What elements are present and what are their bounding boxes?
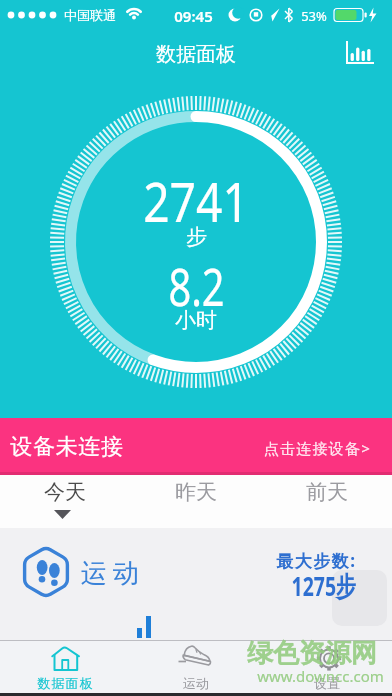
button[interactable]: 设备未连接 [0,418,392,475]
button[interactable]: 前天 [261,475,392,528]
staticText: 运动 [183,675,209,691]
staticText: 数据面板 [37,675,93,691]
staticText: 点击连接设备> [264,438,371,458]
staticText: 设备未连接 [10,433,124,461]
staticText: 09:45 [174,6,213,26]
button[interactable]: 数据面板 [0,640,130,696]
staticText: 中国联通 [64,7,116,23]
staticText: 运动 [78,557,142,590]
staticText: 绿色资源网 [247,637,377,670]
button[interactable] [340,36,380,70]
staticText: 1275步 [291,567,356,604]
staticText: 最大步数: [276,549,357,572]
staticText: 昨天 [175,479,217,505]
staticText: 数据面板 [156,42,236,67]
staticText: 前天 [306,479,348,505]
staticText: 设置 [314,675,340,691]
staticText: 2741 [143,163,249,223]
staticText: 小时 [175,307,217,333]
button[interactable]: 运动 [130,640,261,696]
staticText: www.downcc.com [257,666,384,686]
button[interactable]: 昨天 [130,475,261,528]
staticText: 步 [186,224,207,250]
staticText: 8.2 [168,251,225,307]
button[interactable]: 今天 [0,475,130,528]
button[interactable]: 设置 [261,640,392,696]
staticText: 今天 [44,479,86,505]
button[interactable]: 运动 [0,528,392,640]
staticText: 53% [301,7,327,25]
